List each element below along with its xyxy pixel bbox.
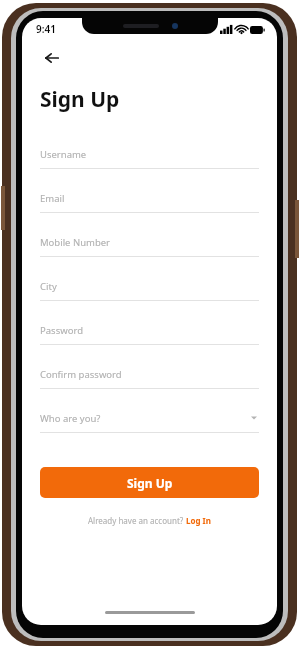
staticText: Log In bbox=[186, 515, 211, 526]
staticText: Password bbox=[40, 324, 83, 337]
staticText: 9:41 bbox=[36, 22, 56, 36]
button[interactable]: Username bbox=[40, 140, 259, 169]
staticText: Username bbox=[40, 148, 87, 161]
staticText: Confirm password bbox=[40, 368, 122, 381]
button[interactable]: Who are you? bbox=[40, 404, 259, 433]
button[interactable]: Email bbox=[40, 184, 259, 213]
staticText: Sign Up bbox=[127, 475, 173, 491]
staticText: Who are you? bbox=[40, 412, 101, 425]
button[interactable]: Back bbox=[40, 46, 64, 70]
staticText: City bbox=[40, 280, 57, 293]
button[interactable]: Mobile Number bbox=[40, 228, 259, 257]
staticText: Sign Up bbox=[40, 85, 120, 114]
button[interactable]: Password bbox=[40, 316, 259, 345]
staticText: Mobile Number bbox=[40, 236, 111, 249]
button[interactable]: City bbox=[40, 272, 259, 301]
button[interactable]: Confirm password bbox=[40, 360, 259, 389]
button[interactable]: Sign Up bbox=[40, 467, 259, 498]
staticText: Email bbox=[40, 192, 65, 205]
button[interactable]: Log In bbox=[186, 515, 211, 526]
staticText: Already have an account? bbox=[88, 515, 186, 526]
